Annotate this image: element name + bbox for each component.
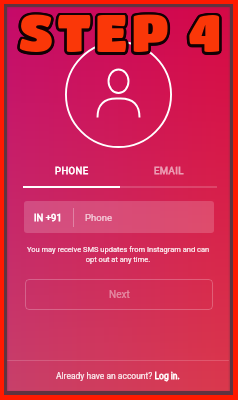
button[interactable]: IN +91 (24, 201, 214, 233)
staticText: Next (109, 289, 130, 301)
staticText: Already have an account? Log in. (56, 371, 180, 381)
button[interactable]: PHONE (23, 165, 120, 188)
staticText: PHONE (55, 165, 89, 176)
staticText: IN +91 (34, 212, 62, 223)
button[interactable]: Next (25, 279, 213, 310)
button[interactable]: Already have an account? Log in. (7, 361, 229, 391)
other: Profile photo (65, 41, 172, 148)
staticText: EMAIL (154, 165, 184, 176)
staticText: You may receive SMS updates from Instagr… (24, 245, 212, 264)
staticText: Phone (85, 212, 112, 223)
button[interactable]: EMAIL (120, 165, 217, 188)
